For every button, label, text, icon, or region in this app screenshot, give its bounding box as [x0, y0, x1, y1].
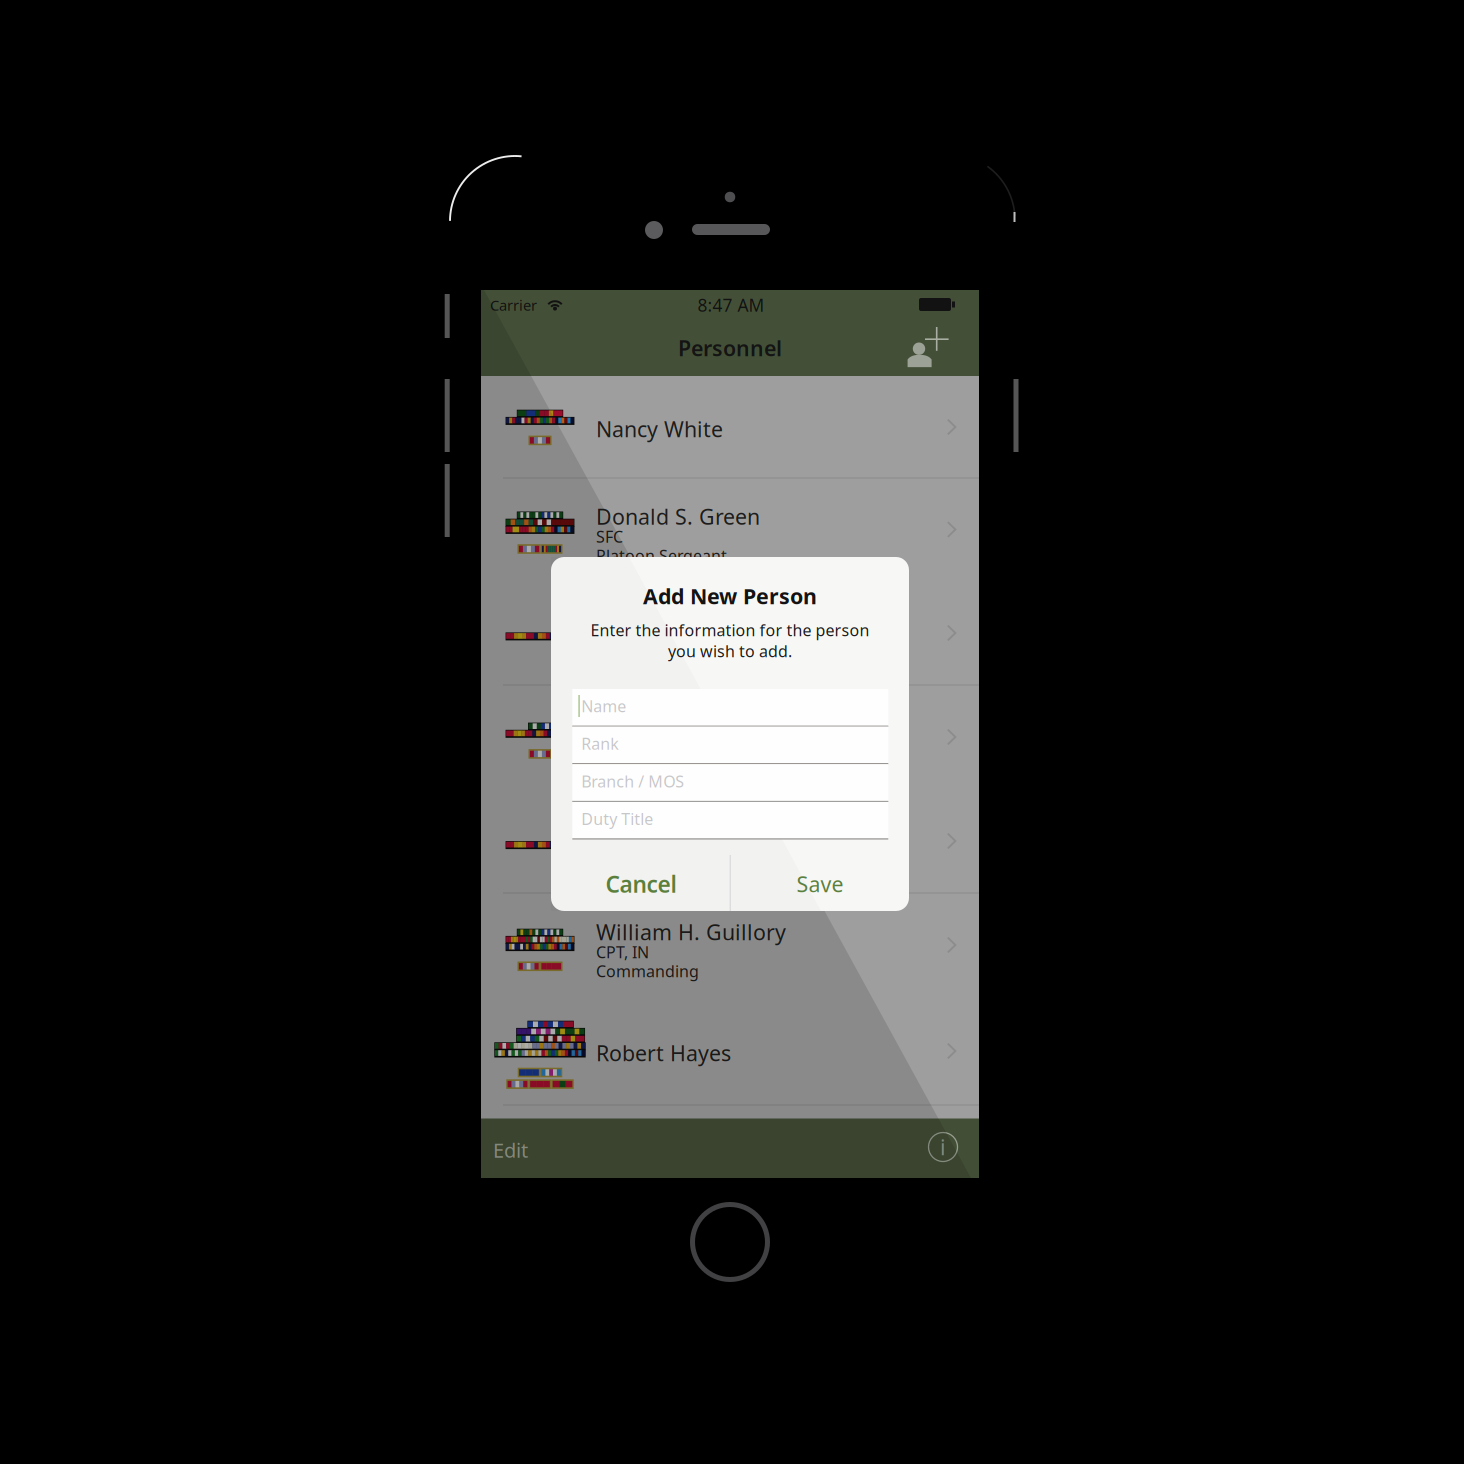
staticText: Robert Hayes: [596, 1039, 731, 1067]
button[interactable]: Person: [481, 290, 979, 1178]
button[interactable]: William H. Guillory, CPT, IN, Commanding: [481, 290, 979, 1178]
staticText: Add New Person: [643, 582, 817, 610]
staticText: Duty Title: [581, 808, 653, 829]
staticText: 8:47 AM: [697, 293, 764, 316]
button[interactable]: Donald S. Green, SFC, Platoon Sergeant: [481, 290, 979, 1178]
staticText: Edit: [493, 1137, 528, 1163]
button[interactable]: Cancel: [552, 856, 730, 912]
button[interactable]: Add Person: [902, 318, 964, 376]
button[interactable]: Info: [920, 1124, 966, 1170]
button[interactable]: Save: [731, 856, 909, 912]
button[interactable]: Edit: [493, 1124, 567, 1176]
staticText: Rank: [581, 733, 619, 754]
staticText: you wish to add.: [668, 640, 792, 662]
button[interactable]: Person: [481, 290, 979, 1178]
staticText: Branch / MOS: [581, 771, 684, 792]
staticText: Platoon Sergeant: [596, 545, 727, 566]
staticText: Commanding: [596, 960, 699, 982]
staticText: Cancel: [605, 869, 676, 899]
staticText: Carrier: [490, 295, 537, 315]
staticText: Personnel: [678, 334, 782, 362]
staticText: Donald S. Green: [596, 502, 760, 531]
staticText: i: [940, 1133, 946, 1161]
button[interactable]: Robert Hayes: [481, 290, 979, 1178]
staticText: SFC: [596, 526, 623, 547]
button[interactable]: Person: [481, 290, 979, 1178]
button[interactable]: Nancy White: [481, 290, 979, 1178]
staticText: Enter the information for the person: [590, 619, 869, 641]
staticText: Nancy White: [596, 415, 723, 443]
staticText: Name: [581, 695, 626, 717]
staticText: Save: [796, 870, 843, 898]
staticText: CPT, IN: [596, 941, 649, 963]
staticText: William H. Guillory: [596, 918, 786, 946]
